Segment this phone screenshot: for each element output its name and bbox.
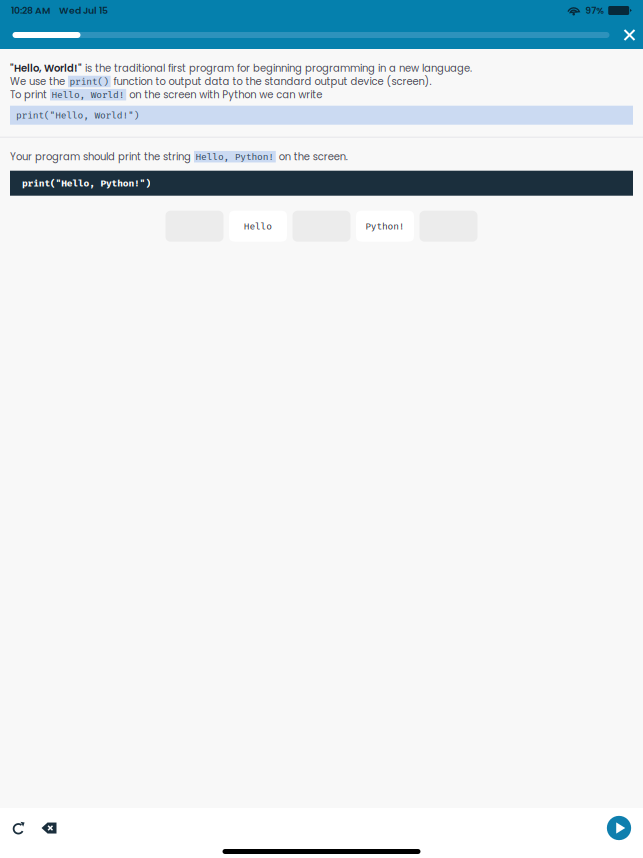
- button[interactable]: Delete: [36, 815, 62, 841]
- staticText: Python!: [365, 220, 405, 232]
- staticText: print(): [69, 76, 109, 87]
- staticText: 10:28 AM: [11, 4, 50, 17]
- staticText: Hello: [244, 220, 272, 232]
- staticText: Wed Jul 15: [59, 4, 108, 17]
- staticText: Hello, World!: [51, 89, 125, 100]
- staticText: Your program should print the string: [10, 150, 194, 164]
- button[interactable]: Close: [617, 23, 641, 47]
- staticText: is the traditional first program for beg…: [82, 61, 472, 75]
- button[interactable]: Run: [606, 815, 632, 841]
- staticText: We use the: [10, 74, 68, 88]
- staticText: "Hello, World!": [10, 61, 82, 75]
- staticText: on the screen.: [276, 150, 348, 164]
- button[interactable]: Hello: [229, 211, 287, 242]
- staticText: print("Hello, World!"): [16, 109, 140, 121]
- staticText: on the screen with Python we can write: [126, 88, 322, 102]
- staticText: print("Hello, Python!"): [22, 177, 151, 189]
- staticText: function to output data to the standard …: [111, 74, 432, 88]
- staticText: To print: [10, 88, 50, 102]
- button[interactable]: Reset: [6, 815, 32, 841]
- button[interactable]: Python!: [356, 211, 414, 242]
- staticText: 97%: [585, 4, 604, 17]
- staticText: Hello, Python!: [195, 151, 274, 162]
